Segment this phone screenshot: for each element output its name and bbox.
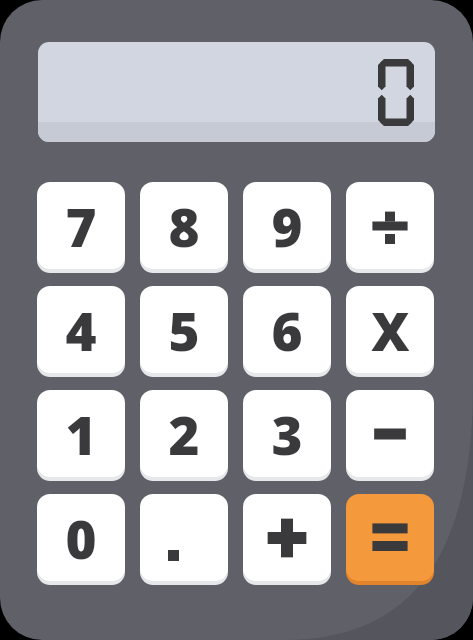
staticText: X <box>371 294 410 366</box>
button[interactable]: 1 <box>37 390 125 481</box>
staticText: 6 <box>271 294 303 366</box>
staticText: 8 <box>168 190 200 262</box>
button[interactable]: Add <box>243 494 331 585</box>
button[interactable]: Divide <box>346 182 434 273</box>
button[interactable]: 6 <box>243 286 331 377</box>
button[interactable]: Decimal point <box>140 494 228 585</box>
button[interactable]: 7 <box>37 182 125 273</box>
staticText: 3 <box>271 398 303 470</box>
button[interactable]: 5 <box>140 286 228 377</box>
button[interactable]: Subtract <box>346 390 434 481</box>
staticText: 5 <box>168 294 200 366</box>
staticText: 4 <box>65 294 97 366</box>
button[interactable]: Equals <box>346 494 434 585</box>
button[interactable]: Multiply <box>346 286 434 377</box>
button[interactable]: 3 <box>243 390 331 481</box>
button[interactable]: 2 <box>140 390 228 481</box>
staticText: 1 <box>65 398 97 470</box>
button[interactable]: 0 <box>37 494 125 585</box>
button[interactable]: 4 <box>37 286 125 377</box>
button[interactable]: 9 <box>243 182 331 273</box>
staticText: 7 <box>65 190 97 262</box>
staticText: 9 <box>271 190 303 262</box>
staticText: 0 <box>65 502 97 574</box>
staticText: 2 <box>168 398 200 470</box>
button[interactable]: 8 <box>140 182 228 273</box>
